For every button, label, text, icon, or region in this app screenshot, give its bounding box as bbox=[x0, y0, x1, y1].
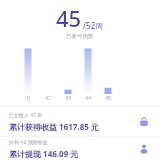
staticText: /52周 bbox=[83, 20, 104, 31]
staticText: 已参与周数 bbox=[66, 33, 94, 40]
staticText: 44 bbox=[80, 95, 96, 102]
staticText: 45 bbox=[100, 95, 116, 102]
staticText: 41 bbox=[20, 95, 36, 102]
staticText: 45 bbox=[56, 3, 82, 33]
staticText: 42 bbox=[40, 95, 56, 102]
staticText: 已创建人 47 家 bbox=[9, 112, 43, 119]
staticText: 目标-42 预期收益 bbox=[9, 139, 48, 146]
staticText: 43 bbox=[60, 95, 76, 102]
button[interactable]: 目标-42 预期收益 bbox=[0, 137, 160, 160]
button[interactable]: Withdraw bbox=[136, 141, 152, 157]
staticText: 累计获得收益 1617.85 元 bbox=[9, 121, 99, 132]
button[interactable]: 已创建人 47 家 bbox=[0, 107, 160, 136]
button[interactable]: Earnings bbox=[136, 114, 152, 130]
staticText: 累计提现 146.09 元 bbox=[9, 148, 79, 159]
